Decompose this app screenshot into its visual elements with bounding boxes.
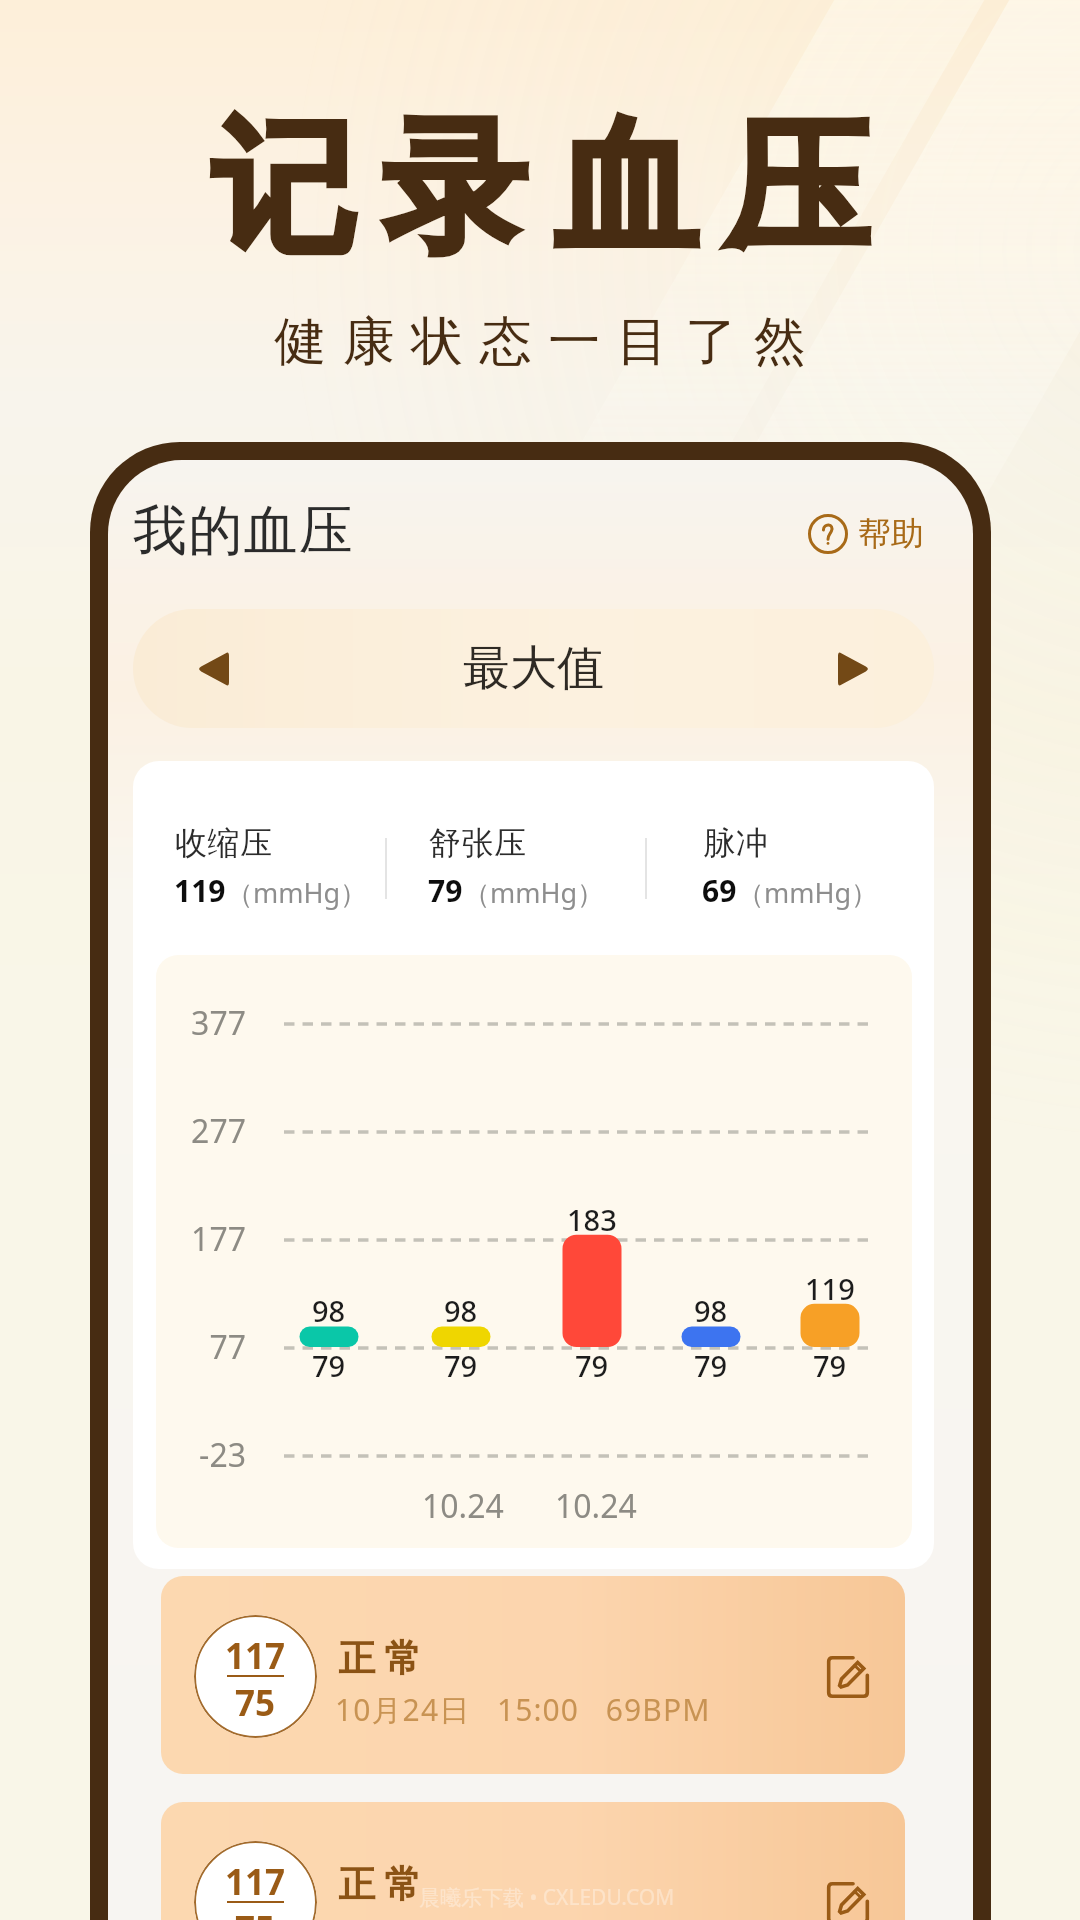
staticText: 183 — [567, 1200, 617, 1239]
button[interactable]: 帮助 — [808, 506, 924, 562]
staticText: 98 — [444, 1291, 478, 1330]
staticText: 帮助 — [858, 513, 924, 555]
staticText: 记录血压 — [198, 98, 882, 279]
staticText: 117 — [225, 1858, 286, 1906]
other: Previous — [197, 651, 229, 687]
staticText: 69 — [702, 870, 737, 911]
staticText: 脉冲 — [703, 823, 768, 863]
staticText: 75 — [235, 1679, 276, 1727]
staticText: （mmHg） — [226, 874, 368, 911]
staticText: 10.24 — [555, 1484, 637, 1528]
staticText: 79 — [312, 1346, 346, 1385]
staticText: 119 — [174, 870, 226, 911]
button[interactable]: 最大值 — [133, 609, 934, 728]
staticText: 10月24日 15:00 69BPM — [335, 1689, 711, 1730]
staticText: 77 — [209, 1325, 246, 1369]
staticText: 收缩压 — [175, 823, 273, 863]
staticText: 119 — [805, 1269, 855, 1308]
staticText: 98 — [694, 1291, 728, 1330]
staticText: 正常 — [334, 1635, 426, 1682]
button[interactable]: Edit record — [817, 1646, 879, 1708]
staticText: 我的血压 — [133, 497, 355, 565]
staticText: 健康状态一目了然 — [266, 309, 814, 375]
staticText: （mmHg） — [463, 874, 605, 911]
staticText: 10月24日 15:00 69BPM — [335, 1915, 711, 1920]
staticText: 79 — [694, 1346, 728, 1385]
staticText: 10.24 — [422, 1484, 504, 1528]
staticText: 79 — [444, 1346, 478, 1385]
staticText: 晨曦乐下载 • CXLEDU.COM — [419, 1883, 675, 1912]
staticText: 377 — [191, 1001, 246, 1045]
button[interactable]: 117 — [161, 1576, 905, 1774]
button[interactable]: 117 — [161, 1802, 905, 1920]
staticText: 最大值 — [463, 639, 604, 698]
staticText: -23 — [199, 1433, 246, 1477]
button[interactable]: Edit record — [817, 1872, 879, 1920]
staticText: 177 — [191, 1217, 246, 1261]
staticText: 98 — [312, 1291, 346, 1330]
staticText: （mmHg） — [737, 874, 879, 911]
staticText: 79 — [813, 1346, 847, 1385]
staticText: 79 — [575, 1346, 609, 1385]
staticText: 75 — [235, 1905, 276, 1920]
staticText: 79 — [428, 870, 463, 911]
staticText: 舒张压 — [429, 823, 527, 863]
staticText: 117 — [225, 1632, 286, 1680]
other: Next — [838, 651, 870, 687]
staticText: 正常 — [334, 1861, 426, 1908]
staticText: 277 — [191, 1109, 246, 1153]
